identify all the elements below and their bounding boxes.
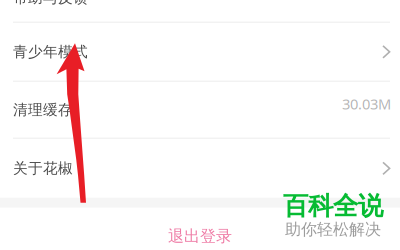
button[interactable]: 青少年模式 — [0, 23, 400, 81]
staticText: 退出登录 — [168, 226, 232, 246]
button[interactable]: 关于花椒 — [0, 139, 400, 198]
button[interactable]: 清理缓存 — [0, 82, 400, 138]
button[interactable]: 帮助与反馈 — [0, 0, 400, 22]
staticText: 助你轻松解决 — [285, 220, 381, 239]
staticText: 百科全说 — [283, 190, 383, 222]
button[interactable]: 退出登录 — [0, 208, 400, 250]
staticText: 关于花椒 — [13, 159, 73, 177]
staticText: 清理缓存 — [13, 101, 73, 119]
staticText: 青少年模式 — [13, 43, 88, 61]
staticText: 帮助与反馈 — [13, 0, 88, 7]
staticText: 30.03M — [342, 94, 391, 113]
